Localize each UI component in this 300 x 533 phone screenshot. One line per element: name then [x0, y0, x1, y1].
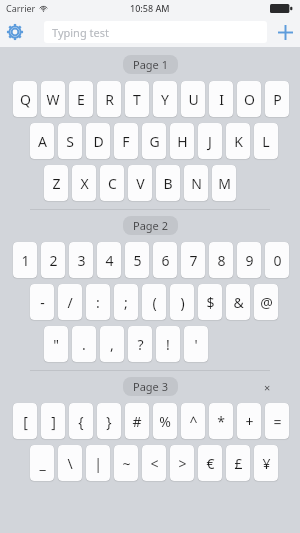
button[interactable]: Page 1 [123, 55, 178, 74]
button[interactable]: # [125, 403, 149, 439]
button[interactable]: I [209, 81, 233, 117]
staticText: 9 [245, 251, 254, 270]
staticText: - [40, 293, 45, 312]
staticText: R [105, 90, 114, 109]
button[interactable]: < [142, 445, 166, 481]
button[interactable]: 3 [69, 242, 93, 278]
staticText: + [245, 412, 254, 431]
button[interactable]: 1 [13, 242, 37, 278]
button[interactable]: W [41, 81, 65, 117]
staticText: W [46, 90, 60, 109]
button[interactable]: K [226, 123, 250, 159]
button[interactable]: ; [114, 284, 138, 320]
button[interactable]: E [69, 81, 93, 117]
button[interactable]: @ [254, 284, 278, 320]
button[interactable]: 9 [237, 242, 261, 278]
button[interactable]: Settings [0, 17, 30, 47]
staticText: 10:58 AM [130, 2, 170, 14]
button[interactable]: \ [58, 445, 82, 481]
button[interactable]: T [125, 81, 149, 117]
button[interactable]: ' [184, 326, 208, 362]
button[interactable]: ) [170, 284, 194, 320]
staticText: A [38, 132, 47, 151]
button[interactable]: B [156, 165, 180, 201]
button[interactable]: ~ [114, 445, 138, 481]
button[interactable]: ! [156, 326, 180, 362]
staticText: Y [161, 90, 169, 109]
button[interactable]: L [254, 123, 278, 159]
button[interactable]: U [181, 81, 205, 117]
button[interactable]: | [86, 445, 110, 481]
button[interactable]: C [100, 165, 124, 201]
button[interactable]: { [69, 403, 93, 439]
button[interactable]: Typing test [44, 21, 267, 43]
button[interactable]: , [100, 326, 124, 362]
staticText: $ [206, 293, 215, 312]
button[interactable]: D [86, 123, 110, 159]
button[interactable]: = [265, 403, 289, 439]
button[interactable]: . [72, 326, 96, 362]
button[interactable]: 2 [41, 242, 65, 278]
button[interactable]: 5 [125, 242, 149, 278]
staticText: # [132, 412, 142, 431]
button[interactable]: O [237, 81, 261, 117]
button[interactable]: Page 2 [123, 216, 178, 235]
button[interactable]: & [226, 284, 250, 320]
button[interactable]: ( [142, 284, 166, 320]
staticText: , [110, 335, 114, 354]
button[interactable]: S [58, 123, 82, 159]
button[interactable]: A [30, 123, 54, 159]
button[interactable]: - [30, 284, 54, 320]
staticText: Q [20, 90, 31, 109]
button[interactable]: Add [270, 17, 300, 47]
button[interactable]: ] [41, 403, 65, 439]
staticText: 3 [77, 251, 86, 270]
button[interactable]: N [184, 165, 208, 201]
button[interactable]: % [153, 403, 177, 439]
staticText: ¥ [262, 454, 271, 473]
button[interactable]: J [198, 123, 222, 159]
staticText: 7 [189, 251, 198, 270]
button[interactable]: / [58, 284, 82, 320]
button[interactable]: 4 [97, 242, 121, 278]
button[interactable]: Z [44, 165, 68, 201]
button[interactable]: * [209, 403, 233, 439]
button[interactable]: G [142, 123, 166, 159]
button[interactable]: > [170, 445, 194, 481]
button[interactable]: Y [153, 81, 177, 117]
button[interactable]: £ [226, 445, 250, 481]
button[interactable]: V [128, 165, 152, 201]
button[interactable]: } [97, 403, 121, 439]
button[interactable]: Q [13, 81, 37, 117]
button[interactable]: " [44, 326, 68, 362]
button[interactable]: ? [128, 326, 152, 362]
staticText: € [206, 454, 215, 473]
staticText: G [149, 132, 160, 151]
button[interactable]: H [170, 123, 194, 159]
button[interactable]: 7 [181, 242, 205, 278]
staticText: . [82, 335, 86, 354]
button[interactable]: R [97, 81, 121, 117]
button[interactable]: M [212, 165, 236, 201]
button[interactable]: ¥ [254, 445, 278, 481]
button[interactable]: : [86, 284, 110, 320]
button[interactable]: F [114, 123, 138, 159]
button[interactable]: € [198, 445, 222, 481]
button[interactable]: Page 3 [123, 377, 178, 396]
staticText: 2 [49, 251, 58, 270]
button[interactable]: ^ [181, 403, 205, 439]
button[interactable]: 8 [209, 242, 233, 278]
staticText: & [233, 293, 244, 312]
button[interactable]: 0 [265, 242, 289, 278]
button[interactable]: [ [13, 403, 37, 439]
button[interactable]: P [265, 81, 289, 117]
staticText: 1 [21, 251, 30, 270]
button[interactable]: X [72, 165, 96, 201]
button[interactable]: Close [258, 378, 276, 396]
button[interactable]: _ [30, 445, 54, 481]
button[interactable]: + [237, 403, 261, 439]
staticText: K [234, 132, 243, 151]
button[interactable]: $ [198, 284, 222, 320]
staticText: C [108, 174, 117, 193]
button[interactable]: 6 [153, 242, 177, 278]
